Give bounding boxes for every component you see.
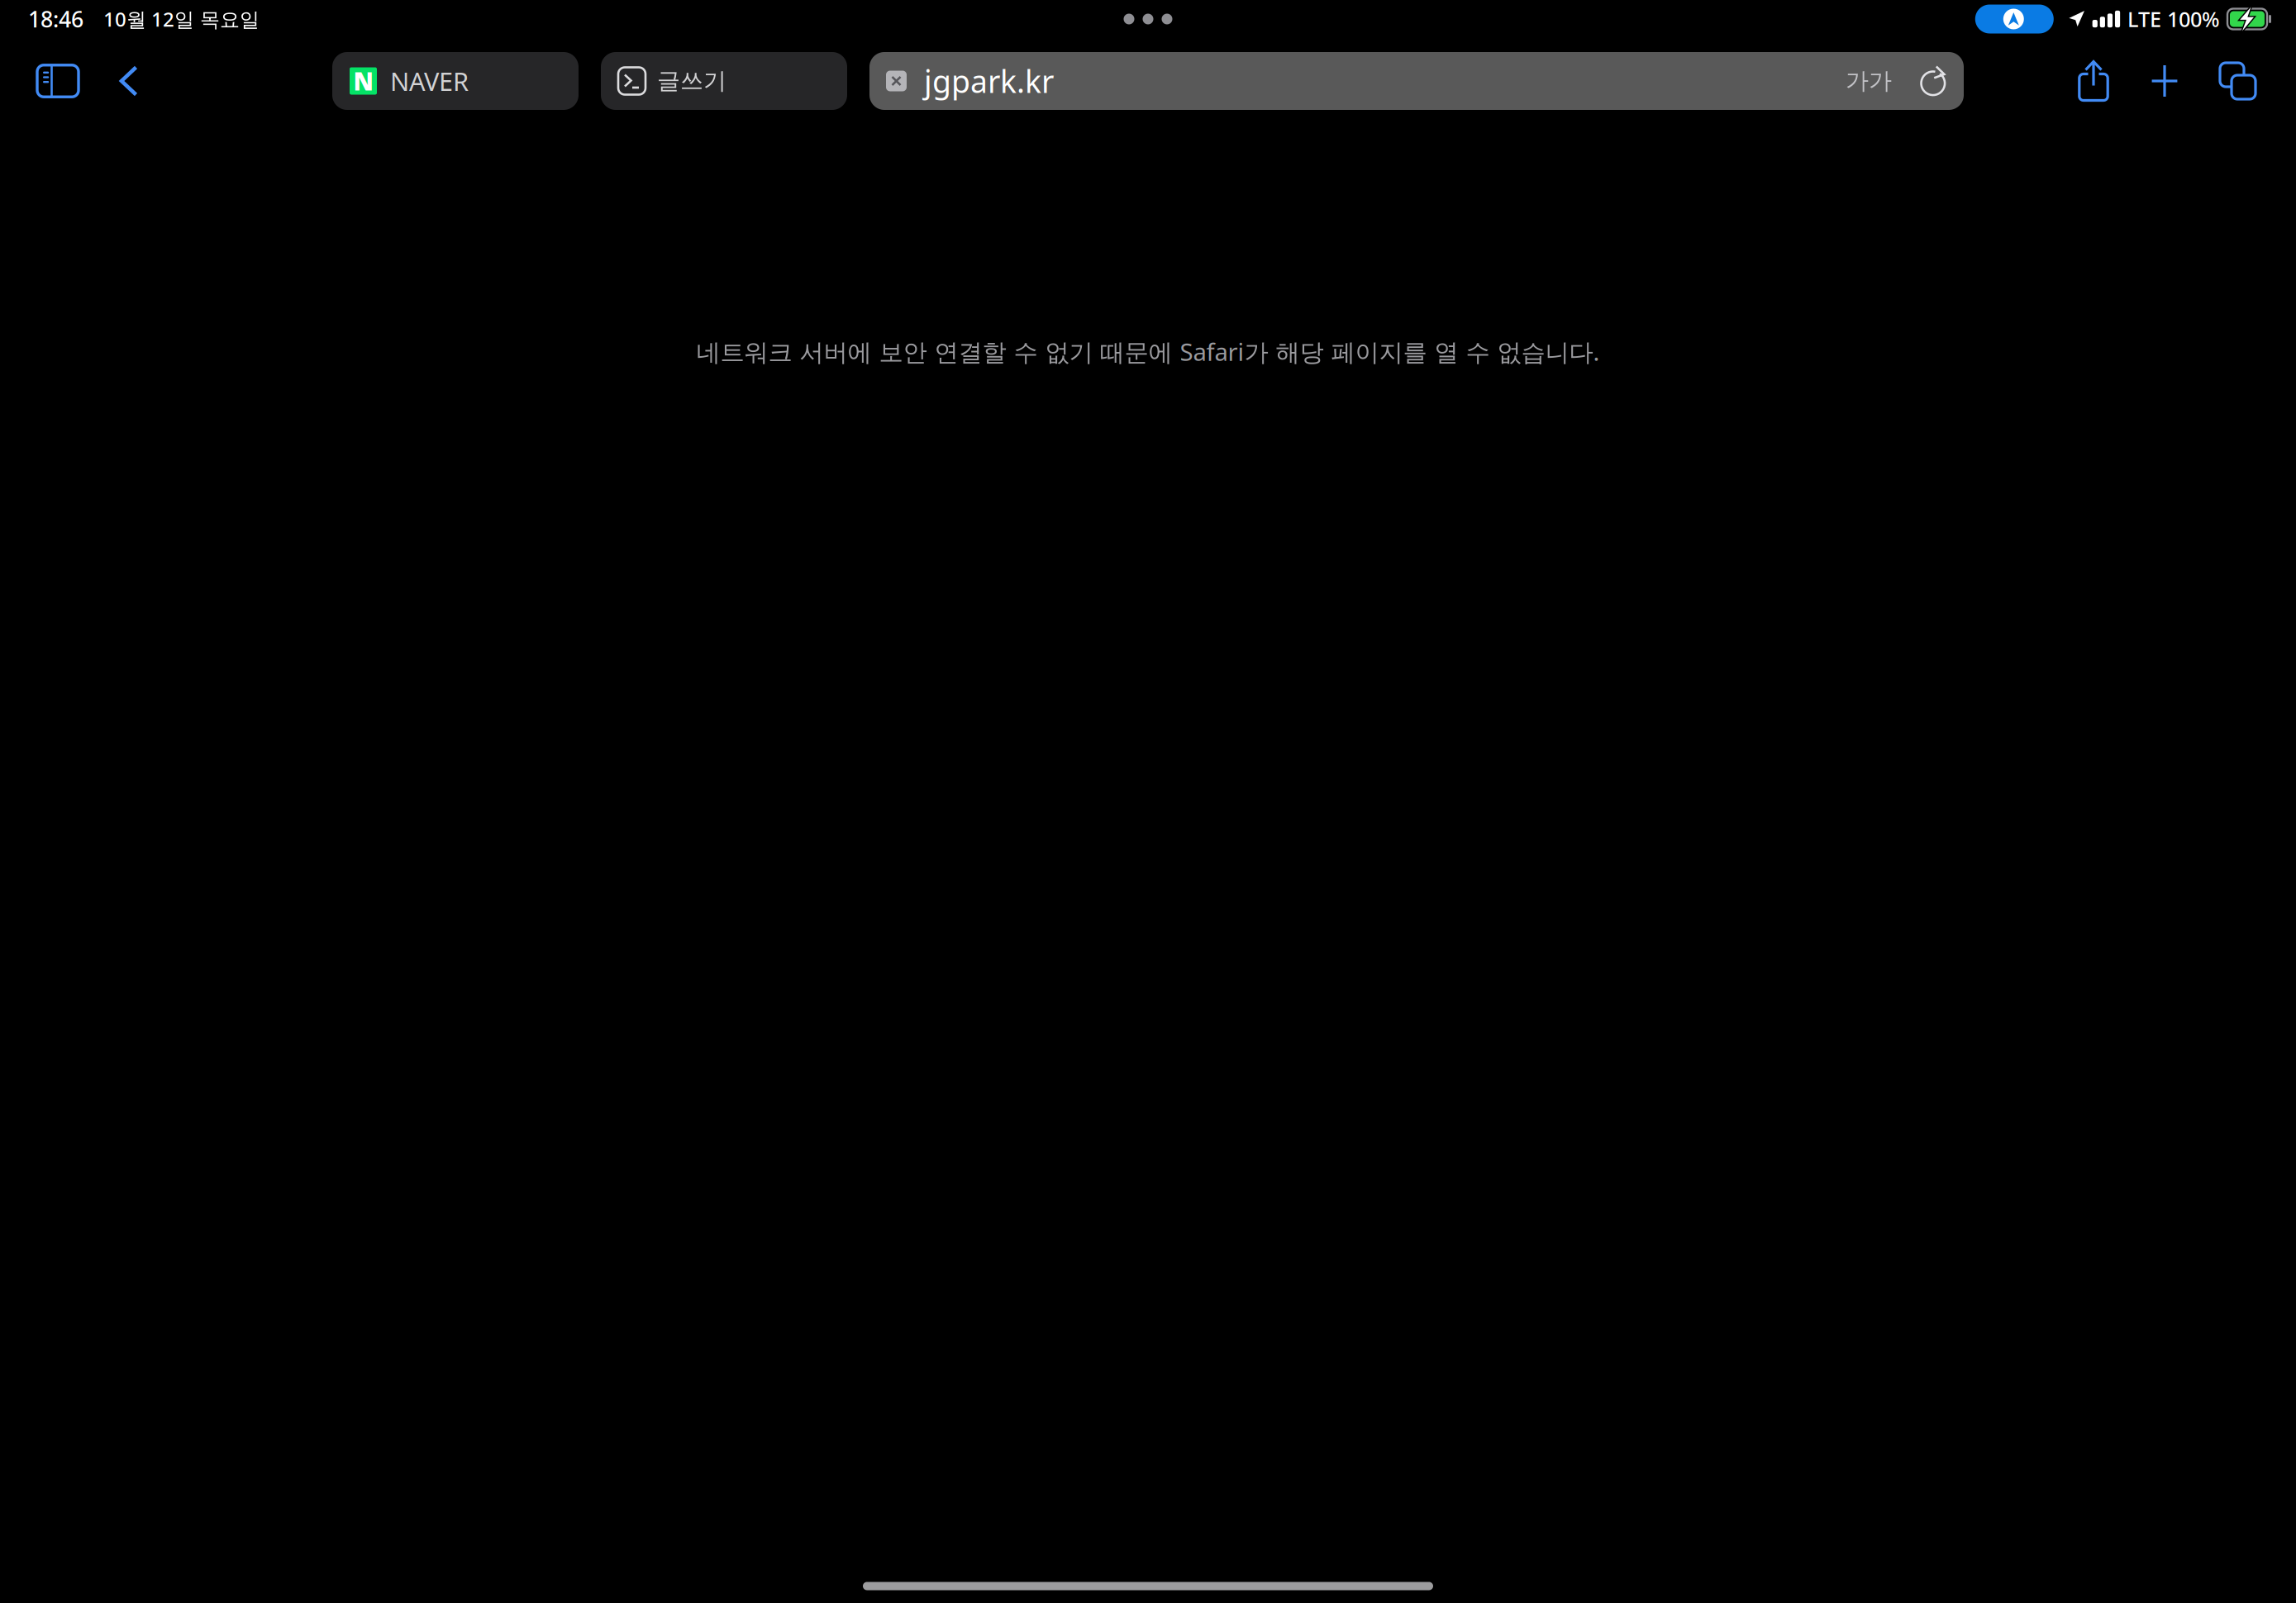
staticText: NAVER — [390, 64, 469, 98]
button[interactable]: 글쓰기 — [601, 52, 847, 110]
button[interactable]: Show Tabs — [2201, 52, 2275, 110]
staticText: LTE 100% — [2127, 5, 2220, 33]
staticText: jgpark.kr — [924, 60, 1054, 101]
button[interactable]: N — [332, 52, 579, 110]
button[interactable]: Back — [79, 52, 179, 110]
staticText: 가가 — [1846, 67, 1892, 95]
staticText: 10월 12일 목요일 — [103, 6, 260, 32]
staticText: 글쓰기 — [657, 67, 726, 95]
button[interactable]: Show Sidebar — [37, 52, 79, 110]
button[interactable]: New Tab — [2128, 52, 2201, 110]
staticText: 18:46 — [28, 4, 83, 34]
staticText: 네트워크 서버에 보안 연결할 수 없기 때문에 Safari가 해당 페이지를… — [696, 335, 1600, 368]
staticText: N — [353, 65, 373, 97]
button[interactable]: jgpark.kr — [869, 52, 1964, 110]
button[interactable]: Share — [2059, 52, 2128, 110]
